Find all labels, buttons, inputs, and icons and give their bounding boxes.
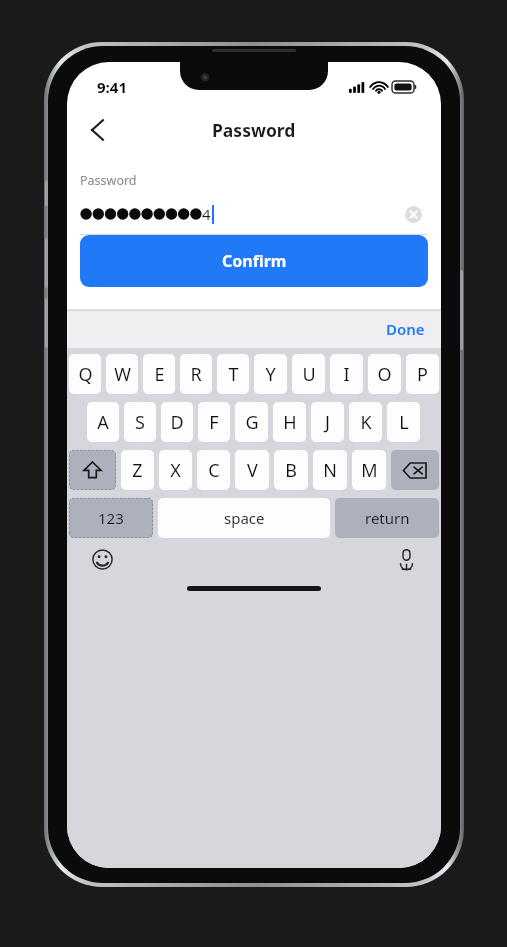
staticText: F — [209, 410, 219, 435]
button[interactable]: L — [387, 402, 420, 442]
button[interactable]: M — [352, 450, 386, 490]
staticText: Q — [78, 362, 93, 387]
button[interactable]: 4 — [80, 199, 428, 229]
button[interactable]: F — [198, 402, 230, 442]
button[interactable]: O — [368, 354, 401, 394]
button[interactable]: Confirm — [80, 235, 428, 287]
button[interactable]: Clear text — [398, 199, 428, 229]
button[interactable]: Y — [254, 354, 287, 394]
button[interactable]: U — [292, 354, 325, 394]
button[interactable]: E — [143, 354, 175, 394]
button[interactable]: G — [235, 402, 268, 442]
staticText: W — [114, 362, 131, 387]
staticText: B — [285, 458, 297, 483]
button[interactable]: H — [273, 402, 306, 442]
staticText: return — [365, 508, 410, 528]
button[interactable]: J — [311, 402, 344, 442]
staticText: 9:41 — [97, 77, 127, 97]
staticText: T — [228, 362, 239, 387]
button[interactable]: W — [106, 354, 138, 394]
button[interactable]: C — [197, 450, 230, 490]
button[interactable]: Dictation — [389, 542, 423, 576]
staticText: Z — [132, 458, 143, 483]
button[interactable]: Backspace — [391, 450, 439, 490]
staticText: M — [361, 458, 378, 483]
button[interactable]: space — [158, 498, 330, 538]
staticText: Confirm — [222, 250, 287, 272]
staticText: P — [417, 362, 428, 387]
staticText: S — [135, 410, 145, 435]
staticText: Password — [80, 172, 137, 189]
button[interactable]: D — [161, 402, 193, 442]
button[interactable]: Done — [378, 314, 433, 344]
staticText: R — [190, 362, 202, 387]
button[interactable]: Back — [75, 108, 119, 152]
staticText: I — [343, 362, 350, 387]
staticText: Y — [265, 362, 276, 387]
staticText: J — [325, 410, 330, 435]
staticText: Done — [386, 319, 425, 339]
button[interactable]: Q — [69, 354, 101, 394]
staticText: U — [302, 362, 316, 387]
staticText: O — [377, 362, 392, 387]
button[interactable]: N — [313, 450, 347, 490]
button[interactable]: S — [124, 402, 156, 442]
button[interactable]: Emoji — [85, 542, 119, 576]
button[interactable]: K — [349, 402, 382, 442]
staticText: V — [247, 458, 258, 483]
staticText: space — [224, 508, 265, 528]
staticText: 123 — [98, 508, 124, 528]
staticText: D — [170, 410, 184, 435]
button[interactable]: P — [406, 354, 439, 394]
button[interactable]: X — [159, 450, 192, 490]
staticText: E — [154, 362, 165, 387]
staticText: L — [399, 410, 409, 435]
staticText: H — [283, 410, 297, 435]
button[interactable]: return — [335, 498, 439, 538]
button[interactable]: Z — [121, 450, 154, 490]
button[interactable]: 123 — [69, 498, 153, 538]
button[interactable]: V — [235, 450, 269, 490]
staticText: N — [323, 458, 337, 483]
button[interactable]: Shift — [69, 450, 116, 490]
button[interactable]: A — [87, 402, 119, 442]
staticText: A — [97, 410, 109, 435]
staticText: 4 — [202, 204, 211, 224]
button[interactable]: B — [274, 450, 308, 490]
staticText: G — [245, 410, 259, 435]
staticText: K — [360, 410, 372, 435]
button[interactable]: I — [330, 354, 363, 394]
staticText: Password — [212, 118, 296, 142]
button[interactable]: R — [180, 354, 212, 394]
staticText: C — [208, 458, 220, 483]
button[interactable]: T — [217, 354, 249, 394]
staticText: X — [170, 458, 181, 483]
